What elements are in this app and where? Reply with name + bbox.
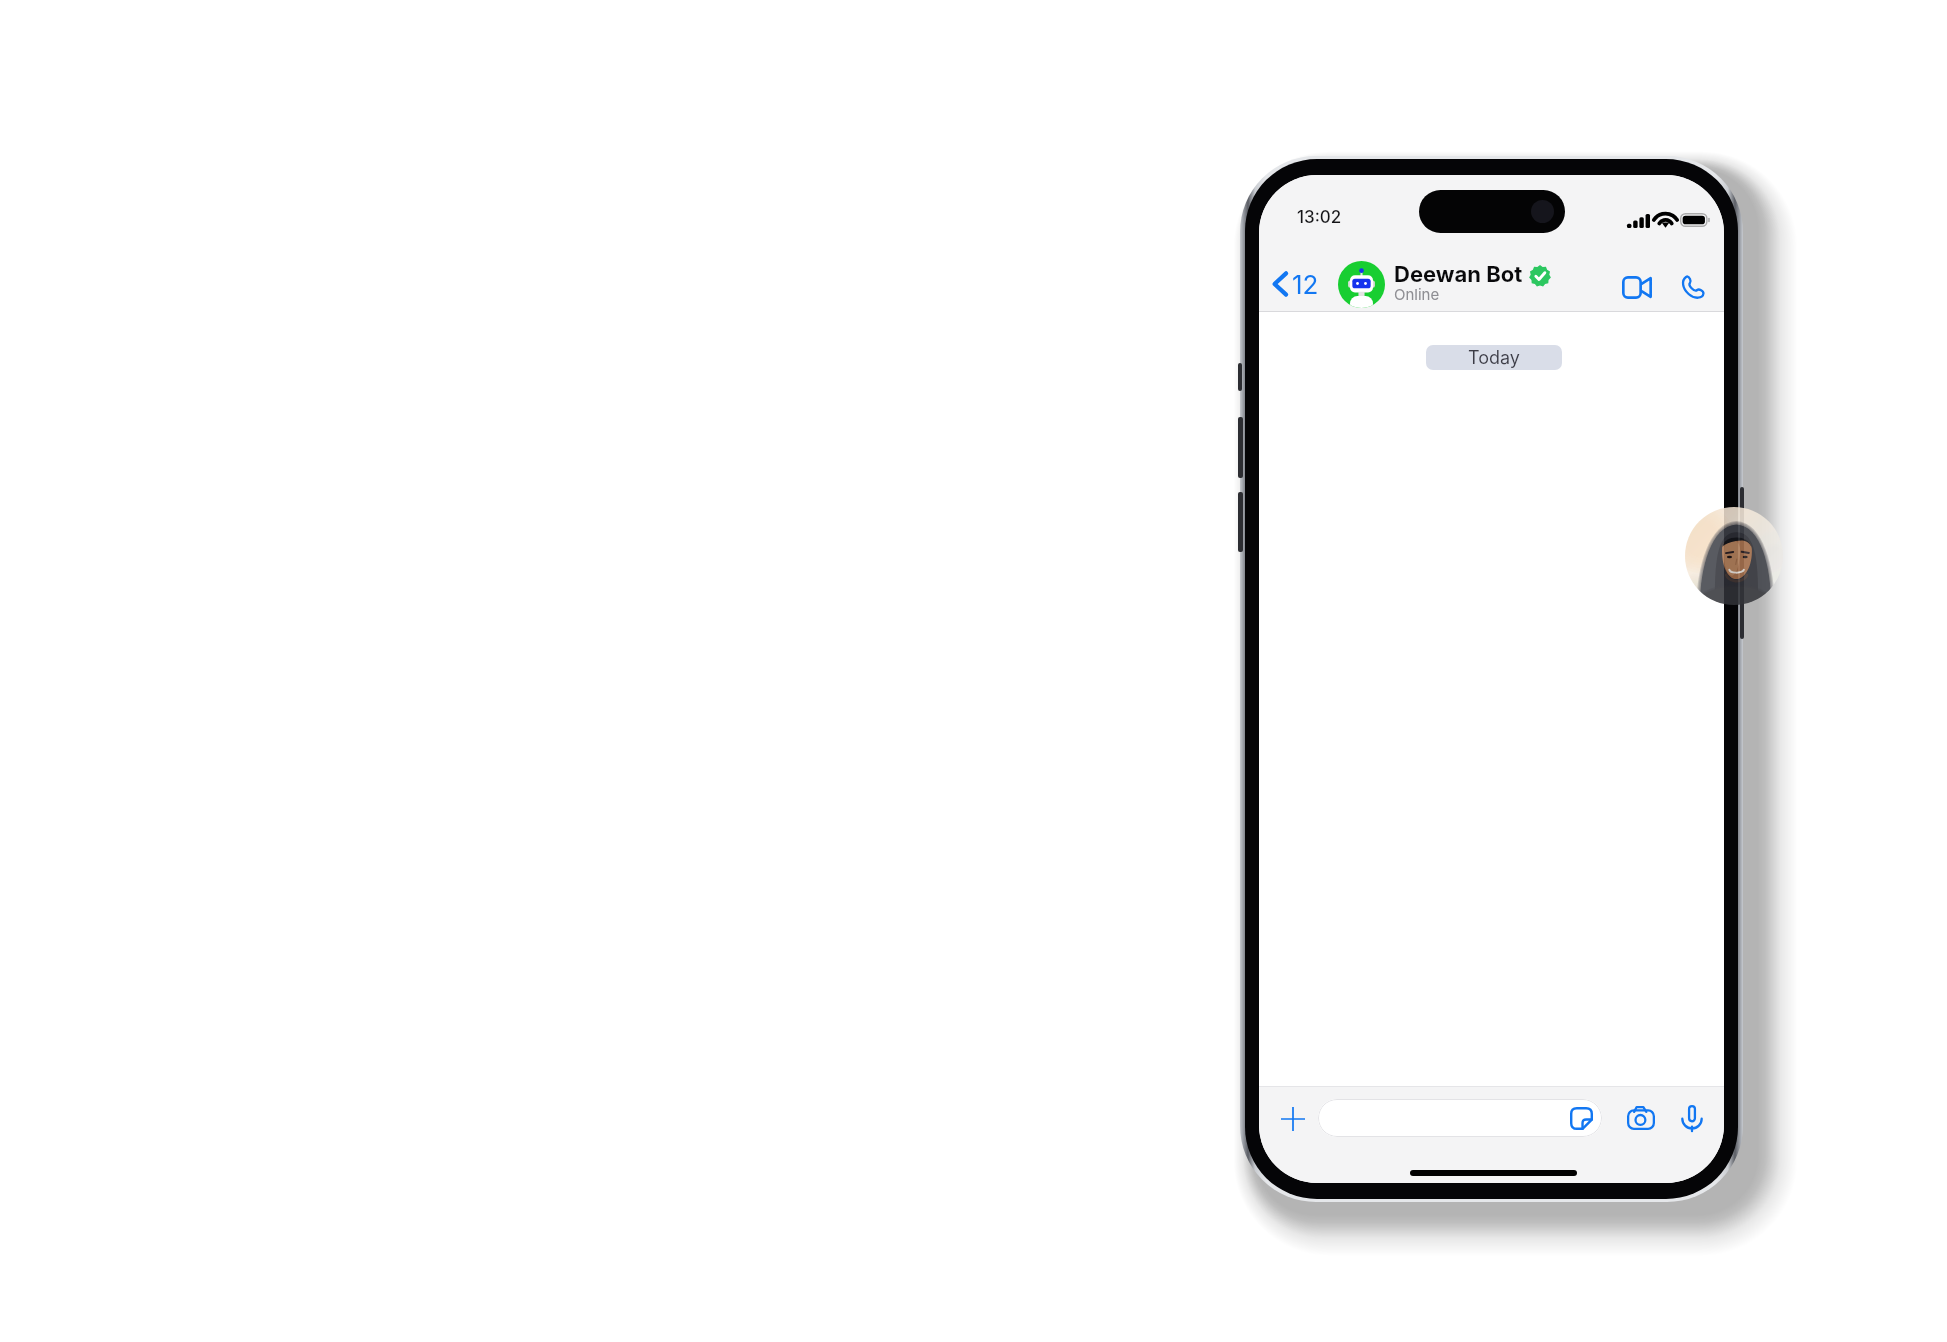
button[interactable]: Today <box>1426 345 1562 370</box>
button[interactable]: Voice call <box>1667 262 1717 312</box>
button[interactable]: Record audio <box>1668 1094 1716 1142</box>
button[interactable]: Video call <box>1612 262 1662 312</box>
button[interactable]: Stickers <box>1570 1107 1593 1130</box>
staticText: Today <box>1468 347 1520 369</box>
staticText: 13:02 <box>1297 207 1342 228</box>
button[interactable]: Back to 12 chats <box>1265 263 1326 305</box>
staticText: Deewan Bot <box>1394 261 1523 288</box>
button[interactable]: Participant avatar <box>1685 507 1783 605</box>
staticText: 12 <box>1292 269 1319 300</box>
button[interactable]: Add attachment <box>1269 1095 1317 1143</box>
button[interactable]: Deewan Bot profile <box>1338 261 1385 308</box>
staticText: Online <box>1394 285 1440 303</box>
button[interactable]: Message input <box>1318 1099 1602 1137</box>
button[interactable]: Camera <box>1617 1094 1665 1142</box>
